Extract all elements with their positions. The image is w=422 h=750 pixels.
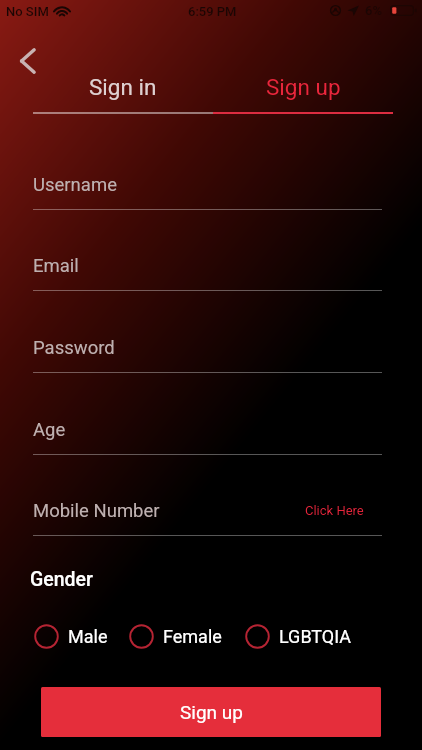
button[interactable]: Sign in (33, 71, 213, 103)
staticText: Sign up (266, 74, 341, 100)
button[interactable]: Age (33, 414, 382, 455)
staticText: Email (33, 255, 79, 277)
staticText: 6% (365, 3, 382, 18)
button[interactable]: Password (33, 332, 382, 373)
staticText: 6:59 PM (188, 4, 237, 19)
button[interactable]: Email (33, 250, 382, 291)
staticText: Male (68, 626, 108, 647)
staticText: Gender (30, 568, 93, 591)
staticText: Sign in (89, 74, 157, 100)
staticText: Female (163, 626, 222, 647)
staticText: No SIM (6, 4, 49, 19)
staticText: Age (33, 419, 66, 441)
button[interactable]: Male (34, 624, 108, 649)
button[interactable]: Back (6, 39, 50, 83)
button[interactable]: Female (129, 624, 222, 649)
staticText: Username (33, 174, 117, 196)
staticText: Password (33, 337, 115, 359)
staticText: LGBTQIA (279, 626, 352, 647)
button[interactable]: Sign up (213, 71, 393, 103)
button[interactable]: LGBTQIA (245, 624, 352, 649)
button[interactable]: Click Here (305, 503, 364, 518)
button[interactable]: Username (33, 169, 382, 210)
staticText: Mobile Number (33, 500, 160, 522)
button[interactable]: Sign up (41, 687, 381, 737)
button[interactable]: Mobile Number (33, 495, 382, 536)
staticText: Sign up (180, 701, 243, 723)
